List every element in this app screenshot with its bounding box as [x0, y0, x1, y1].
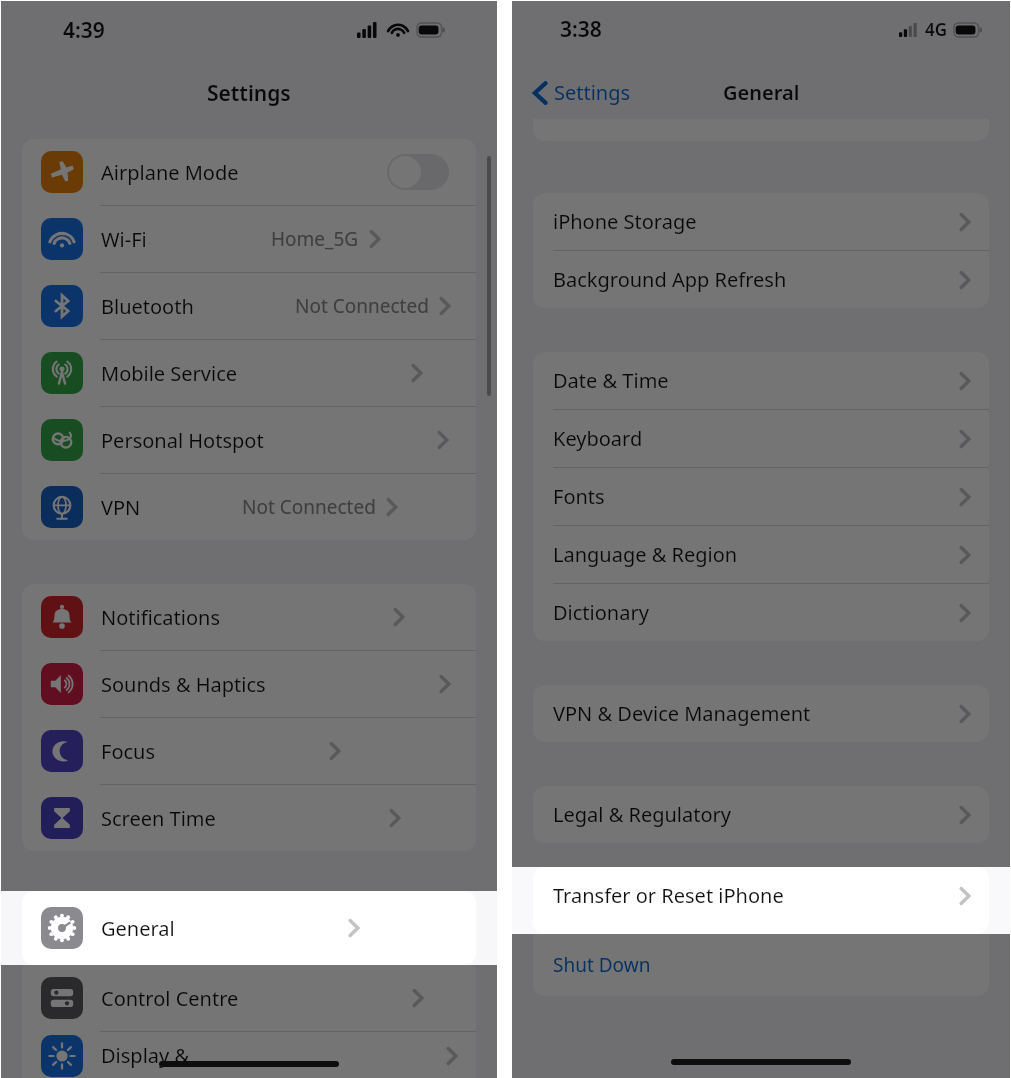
staticText: Settings [554, 79, 631, 106]
staticText: Personal Hotspot [101, 427, 264, 454]
button[interactable]: Shut Down [533, 934, 989, 996]
button[interactable]: Legal & Regulatory [533, 786, 989, 843]
button[interactable]: Control Centre [22, 965, 476, 1031]
staticText: Sounds & Haptics [101, 671, 266, 698]
button[interactable]: iPhone Storage [533, 193, 989, 250]
staticText: Bluetooth [101, 293, 194, 320]
staticText: VPN & Device Management [553, 700, 811, 727]
staticText: Display & Brightness [101, 1042, 273, 1069]
staticText: 3:38 [560, 15, 602, 44]
staticText: Control Centre [101, 985, 239, 1012]
staticText: Notifications [101, 604, 220, 631]
button[interactable]: Wi-Fi [22, 206, 476, 272]
staticText: Focus [101, 738, 156, 765]
button[interactable]: Language & Region [533, 526, 989, 583]
staticText: Settings [207, 79, 291, 108]
button[interactable]: Personal Hotspot [22, 407, 476, 473]
button[interactable]: Airplane Mode toggle [387, 154, 449, 190]
button[interactable]: Fonts [533, 468, 989, 525]
staticText: VPN [101, 494, 141, 521]
staticText: Transfer or Reset iPhone [553, 882, 784, 909]
staticText: Mobile Service [101, 360, 238, 387]
button[interactable]: Sounds & Haptics [22, 651, 476, 717]
staticText: Keyboard [553, 425, 643, 452]
staticText: Date & Time [553, 367, 669, 394]
staticText: General [723, 79, 800, 106]
staticText: General [101, 915, 175, 942]
button[interactable]: Dictionary [533, 584, 989, 641]
button[interactable]: General [22, 891, 476, 965]
staticText: Wi-Fi [101, 226, 147, 253]
button[interactable]: Focus [22, 718, 476, 784]
button[interactable]: Settings [528, 75, 635, 110]
button[interactable]: Notifications [22, 584, 476, 650]
staticText: Screen Time [101, 805, 216, 832]
staticText: Legal & Regulatory [553, 801, 732, 828]
button[interactable]: VPN [22, 474, 476, 540]
staticText: Fonts [553, 483, 605, 510]
button[interactable]: Mobile Service [22, 340, 476, 406]
button[interactable]: Display & Brightness [22, 1032, 476, 1078]
staticText: Home_5G [271, 226, 359, 252]
staticText: iPhone Storage [553, 208, 697, 235]
button[interactable]: VPN & Device Management [533, 685, 989, 742]
button[interactable]: Transfer or Reset iPhone [533, 867, 989, 924]
staticText: Not Connected [242, 494, 376, 520]
button[interactable]: Keyboard [533, 410, 989, 467]
staticText: Language & Region [553, 541, 738, 568]
staticText: Dictionary [553, 599, 649, 626]
staticText: 4:39 [63, 16, 105, 45]
button[interactable]: Bluetooth [22, 273, 476, 339]
button[interactable]: Screen Time [22, 785, 476, 851]
button[interactable]: Date & Time [533, 352, 989, 409]
staticText: Shut Down [553, 952, 651, 978]
staticText: Airplane Mode [101, 159, 239, 186]
button[interactable]: Airplane Mode [22, 139, 476, 205]
button[interactable]: Background App Refresh [533, 251, 989, 308]
staticText: Background App Refresh [553, 266, 787, 293]
staticText: Not Connected [295, 293, 429, 319]
staticText: 4G [925, 18, 948, 41]
